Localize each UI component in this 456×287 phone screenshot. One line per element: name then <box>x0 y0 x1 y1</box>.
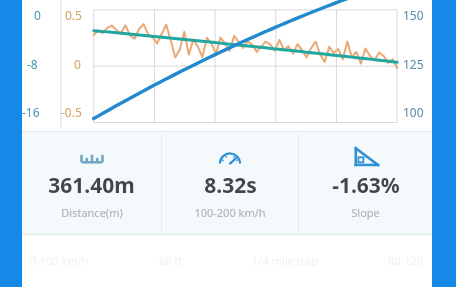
staticText: -0.5 <box>61 104 82 120</box>
staticText: 0 <box>34 7 41 23</box>
staticText: 0.5 <box>65 7 82 23</box>
button[interactable]: Distance <box>22 131 161 235</box>
staticText: Slope <box>351 205 380 220</box>
staticText: 125 <box>403 56 424 72</box>
staticText: 1/4 mile trap <box>252 253 318 267</box>
staticText: 60 ft <box>159 253 183 267</box>
staticText: Distance(m) <box>61 205 123 220</box>
staticText: -1.63% <box>332 171 400 200</box>
button[interactable]: Slope <box>299 131 432 235</box>
staticText: 361.40m <box>48 171 135 200</box>
staticText: 0 <box>74 56 81 72</box>
staticText: 0-100 km/h <box>30 253 89 267</box>
staticText: 8.32s <box>204 171 257 200</box>
button[interactable]: Acceleration time <box>162 131 298 235</box>
staticText: 100 <box>403 104 424 120</box>
staticText: -16 <box>22 104 40 120</box>
staticText: 150 <box>403 7 424 23</box>
staticText: 100-200 km/h <box>194 205 266 220</box>
staticText: 80-120 <box>388 253 424 267</box>
staticText: -8 <box>27 56 38 72</box>
